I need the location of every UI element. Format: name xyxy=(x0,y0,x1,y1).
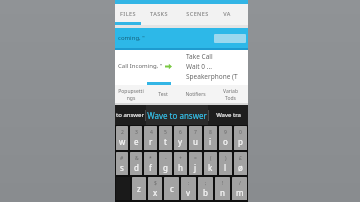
button[interactable]: Take Call xyxy=(186,50,248,82)
button[interactable]: 3 xyxy=(130,126,142,150)
button[interactable]: ) xyxy=(219,152,232,175)
staticText: * xyxy=(149,155,152,162)
staticText: Take Call xyxy=(186,52,213,61)
staticText: p xyxy=(238,136,243,147)
staticText: n xyxy=(220,187,225,198)
staticText: Popupsetti ngs xyxy=(118,88,144,101)
button[interactable]: Wave tra xyxy=(209,105,247,125)
button[interactable]: # xyxy=(116,152,128,175)
staticText: SCENES xyxy=(186,10,209,17)
staticText: 6 xyxy=(179,129,182,136)
staticText: 7 xyxy=(194,129,197,136)
staticText: s xyxy=(120,162,124,173)
button[interactable]: Call Incoming, " xyxy=(115,50,186,82)
staticText: VA xyxy=(223,10,231,17)
staticText: 4 xyxy=(150,129,153,136)
staticText: j xyxy=(194,162,197,173)
staticText: + xyxy=(179,155,182,162)
staticText: g xyxy=(163,162,168,173)
button[interactable]: & xyxy=(130,152,142,175)
staticText: ø xyxy=(238,162,243,173)
staticText: c xyxy=(170,183,174,194)
button[interactable]: Popupsetti ngs xyxy=(115,85,147,103)
staticText: u xyxy=(193,136,198,147)
button[interactable]: - xyxy=(159,152,172,175)
staticText: 8 xyxy=(209,129,212,136)
staticText: coming, " xyxy=(118,34,145,42)
button[interactable]: = xyxy=(189,152,202,175)
staticText: 5 xyxy=(164,129,167,136)
button[interactable]: ! xyxy=(215,177,230,200)
staticText: = xyxy=(194,155,197,162)
button[interactable]: 4 xyxy=(144,126,157,150)
button[interactable]: Wave to answer xyxy=(146,105,208,125)
staticText: v xyxy=(186,187,191,198)
staticText: w xyxy=(119,136,126,147)
staticText: Notifiers xyxy=(185,91,206,98)
button[interactable]: 0 xyxy=(234,126,247,150)
button[interactable]: 8 xyxy=(204,126,217,150)
staticText: - xyxy=(165,155,167,162)
button[interactable]: 6 xyxy=(174,126,187,150)
button[interactable]: Test xyxy=(147,85,178,103)
button[interactable]: Notifiers xyxy=(178,85,212,103)
staticText: / xyxy=(239,180,241,187)
staticText: f xyxy=(149,162,152,173)
staticText: 2 xyxy=(121,129,124,136)
staticText: 3 xyxy=(135,129,138,136)
staticText: FILES xyxy=(120,10,136,17)
button[interactable]: 5 xyxy=(159,126,172,150)
button[interactable]: z xyxy=(132,177,146,200)
staticText: ( xyxy=(210,155,212,162)
staticText: ) xyxy=(225,155,227,162)
staticText: : xyxy=(188,180,190,187)
button[interactable]: Variab Tods xyxy=(212,85,248,103)
staticText: Wave tra xyxy=(216,111,241,119)
button[interactable]: to answer xyxy=(115,105,145,125)
other: Leads to xyxy=(165,63,172,70)
staticText: Wait 0 ... xyxy=(186,62,212,71)
button[interactable]: TASKS xyxy=(141,4,177,22)
staticText: b xyxy=(203,187,208,198)
button[interactable]: c xyxy=(164,177,179,200)
button[interactable]: £ xyxy=(234,152,247,175)
staticText: y xyxy=(178,136,183,147)
staticText: Call Incoming, " xyxy=(118,62,163,70)
button[interactable]: $ xyxy=(148,177,162,200)
staticText: e xyxy=(134,136,139,147)
button[interactable]: * xyxy=(144,152,157,175)
staticText: Wave to answer xyxy=(147,110,207,121)
staticText: o xyxy=(223,136,228,147)
staticText: m xyxy=(236,187,244,198)
staticText: £ xyxy=(239,155,242,162)
button[interactable]: ; xyxy=(198,177,213,200)
staticText: 0 xyxy=(239,129,242,136)
button[interactable]: + xyxy=(174,152,187,175)
staticText: Test xyxy=(158,91,168,98)
button[interactable]: FILES xyxy=(115,4,141,22)
staticText: k xyxy=(208,162,213,173)
staticText: i xyxy=(209,136,212,147)
staticText: d xyxy=(134,162,139,173)
button[interactable]: VA xyxy=(217,4,237,22)
staticText: $ xyxy=(154,180,157,187)
button[interactable]: 9 xyxy=(219,126,232,150)
button[interactable]: 2 xyxy=(116,126,128,150)
button[interactable]: 7 xyxy=(189,126,202,150)
staticText: ! xyxy=(222,180,224,187)
button[interactable] xyxy=(214,34,246,43)
staticText: TASKS xyxy=(150,10,168,17)
staticText: r xyxy=(149,136,153,147)
staticText: Variab Tods xyxy=(223,88,238,101)
button[interactable]: SCENES xyxy=(177,4,217,22)
staticText: 9 xyxy=(224,129,227,136)
staticText: # xyxy=(120,155,124,162)
staticText: z xyxy=(137,183,141,194)
staticText: Speakerphone (T xyxy=(186,72,238,81)
staticText: t xyxy=(164,136,167,147)
button[interactable]: / xyxy=(232,177,247,200)
staticText: x xyxy=(153,187,158,198)
button[interactable]: ( xyxy=(204,152,217,175)
button[interactable]: : xyxy=(181,177,196,200)
